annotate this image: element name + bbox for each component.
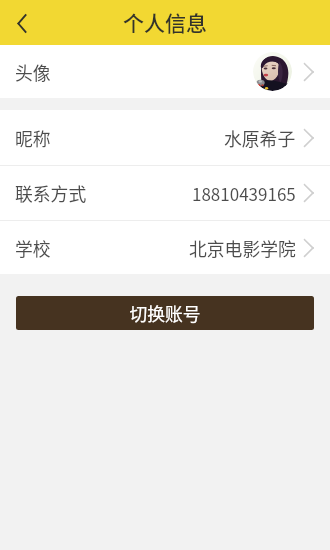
- other: Profile photo: [253, 52, 292, 91]
- button[interactable]: 学校: [0, 221, 330, 274]
- staticText: 切换账号: [129, 300, 201, 326]
- staticText: 18810439165: [192, 181, 296, 206]
- button[interactable]: 昵称: [0, 110, 330, 165]
- staticText: 北京电影学院: [189, 235, 296, 261]
- staticText: 个人信息: [123, 7, 207, 37]
- button[interactable]: Back: [0, 1, 44, 45]
- staticText: 头像: [15, 59, 51, 85]
- button[interactable]: 切换账号: [16, 296, 314, 330]
- button[interactable]: 头像: [0, 45, 330, 98]
- staticText: 昵称: [15, 125, 51, 151]
- staticText: 联系方式: [15, 180, 87, 206]
- button[interactable]: 联系方式: [0, 166, 330, 220]
- staticText: 学校: [15, 235, 51, 261]
- staticText: 水原希子: [224, 125, 296, 151]
